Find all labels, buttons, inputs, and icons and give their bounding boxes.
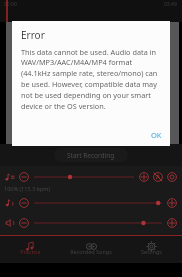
button[interactable]: Decrease tempo [17, 170, 31, 184]
button[interactable]: Volume [3, 216, 17, 230]
button[interactable]: Start Recording [54, 148, 128, 162]
button[interactable]: Settings [121, 236, 182, 263]
button[interactable]: Metronome off [151, 170, 165, 184]
staticText: Settings [141, 248, 162, 255]
button[interactable]: Tempo [3, 170, 17, 184]
button[interactable]: Loop [165, 170, 179, 184]
staticText: Practice [20, 248, 41, 255]
staticText: OK [151, 130, 162, 140]
button[interactable]: Practice [0, 236, 60, 263]
button[interactable]: Music volume [3, 196, 17, 210]
staticText: Error [21, 28, 45, 42]
staticText: 100% (115.3 bpm) [4, 185, 51, 192]
staticText: Start Recording [67, 151, 115, 160]
staticText: This data cannot be used. Audio data in … [21, 47, 163, 111]
button[interactable]: OK [147, 128, 166, 142]
staticText: Recorded Songs [70, 248, 112, 255]
staticText: 03:49 [164, 1, 177, 8]
button[interactable]: Decrease music volume [17, 196, 31, 210]
staticText: 00:00 [4, 1, 17, 8]
button[interactable]: Decrease volume [17, 216, 31, 230]
button[interactable]: Increase music volume [165, 196, 179, 210]
button[interactable]: Recorded Songs [60, 236, 121, 263]
button[interactable]: Increase volume [165, 216, 179, 230]
button[interactable]: Increase tempo [137, 170, 151, 184]
